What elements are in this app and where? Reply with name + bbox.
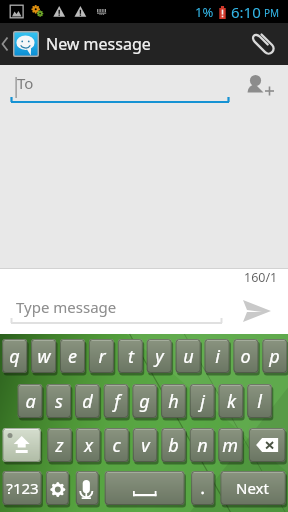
staticText: n: [197, 433, 208, 458]
button[interactable]: e: [60, 339, 85, 373]
button[interactable]: Attach: [240, 23, 288, 65]
button[interactable]: Settings: [46, 471, 69, 505]
button[interactable]: Space: [105, 471, 185, 505]
button[interactable]: Shift: [3, 428, 41, 462]
button[interactable]: u: [176, 339, 201, 373]
staticText: To: [17, 73, 34, 93]
button[interactable]: m: [218, 428, 242, 462]
staticText: h: [168, 389, 179, 414]
button[interactable]: j: [190, 384, 215, 418]
staticText: 160/1: [244, 269, 278, 286]
button[interactable]: Backspace: [249, 428, 286, 462]
staticText: o: [240, 344, 251, 369]
button[interactable]: To: [0, 65, 230, 105]
button[interactable]: Next: [220, 471, 285, 505]
button[interactable]: r: [89, 339, 114, 373]
button[interactable]: Add contact: [230, 65, 288, 105]
staticText: 6:10: [231, 2, 261, 22]
staticText: f: [114, 389, 120, 414]
button[interactable]: a: [18, 384, 43, 418]
button[interactable]: f: [104, 384, 129, 418]
staticText: e: [68, 344, 77, 369]
staticText: ?123: [6, 478, 39, 498]
button[interactable]: p: [262, 339, 287, 373]
staticText: d: [82, 389, 93, 414]
staticText: PM: [264, 6, 280, 20]
staticText: 1%: [195, 3, 214, 21]
button[interactable]: s: [46, 384, 71, 418]
button[interactable]: y: [147, 339, 172, 373]
button[interactable]: c: [104, 428, 128, 462]
staticText: x: [84, 433, 93, 458]
button[interactable]: z: [47, 428, 71, 462]
staticText: p: [269, 344, 280, 369]
staticText: Type message: [16, 297, 117, 317]
staticText: g: [139, 389, 150, 414]
button[interactable]: x: [76, 428, 100, 462]
button[interactable]: o: [233, 339, 258, 373]
staticText: k: [227, 389, 236, 414]
button[interactable]: Up: [0, 23, 39, 65]
button[interactable]: i: [205, 339, 230, 373]
button[interactable]: Type message: [0, 289, 226, 333]
button[interactable]: Send: [226, 289, 288, 333]
staticText: l: [257, 389, 262, 414]
staticText: b: [168, 433, 179, 458]
staticText: s: [55, 389, 63, 414]
button[interactable]: Period: [191, 471, 214, 505]
button[interactable]: n: [190, 428, 214, 462]
staticText: New message: [46, 33, 151, 55]
staticText: j: [200, 389, 205, 414]
button[interactable]: k: [219, 384, 244, 418]
staticText: w: [37, 344, 51, 369]
staticText: Next: [236, 478, 269, 498]
button[interactable]: l: [247, 384, 272, 418]
staticText: u: [183, 344, 194, 369]
staticText: z: [55, 433, 64, 458]
button[interactable]: g: [132, 384, 157, 418]
button[interactable]: ?123: [3, 471, 42, 505]
staticText: v: [141, 433, 150, 458]
staticText: q: [9, 344, 20, 369]
staticText: a: [25, 389, 36, 414]
button[interactable]: t: [118, 339, 143, 373]
staticText: r: [98, 344, 106, 369]
staticText: m: [222, 433, 238, 458]
button[interactable]: b: [161, 428, 185, 462]
button[interactable]: w: [31, 339, 56, 373]
button[interactable]: q: [2, 339, 27, 373]
button[interactable]: h: [161, 384, 186, 418]
button[interactable]: Voice input: [76, 471, 99, 505]
staticText: t: [128, 344, 134, 369]
button[interactable]: d: [75, 384, 100, 418]
staticText: c: [112, 433, 121, 458]
button[interactable]: v: [133, 428, 157, 462]
staticText: y: [155, 344, 164, 369]
staticText: i: [215, 344, 220, 369]
